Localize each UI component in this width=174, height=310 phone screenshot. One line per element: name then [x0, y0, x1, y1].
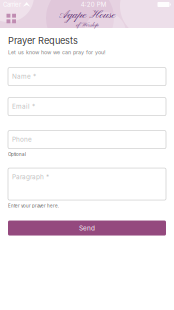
staticText: Paragraph *: [12, 173, 49, 181]
staticText: Agape House: [58, 8, 115, 22]
staticText: Email *: [12, 103, 35, 110]
staticText: Carrier: [3, 1, 21, 8]
staticText: Enter your prayer here.: [8, 203, 59, 209]
staticText: Optional: [8, 152, 26, 157]
button[interactable]: Menu: [0, 10, 20, 27]
staticText: of Worship: [76, 21, 98, 29]
staticText: Phone: [12, 136, 32, 143]
button[interactable]: Send: [8, 221, 166, 236]
staticText: Name *: [12, 73, 36, 80]
staticText: 4:20 PM: [81, 1, 107, 8]
staticText: Send: [79, 224, 95, 232]
staticText: Let us know how we can pray for you!: [8, 49, 106, 56]
staticText: Prayer Requests: [8, 35, 78, 46]
